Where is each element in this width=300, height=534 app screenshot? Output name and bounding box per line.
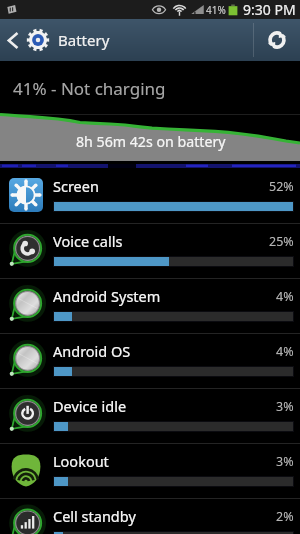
button[interactable]: Android OS [0, 334, 300, 388]
staticText: 3% [276, 453, 294, 470]
staticText: Voice calls [53, 231, 123, 251]
button[interactable]: Android System [0, 279, 300, 333]
button[interactable]: Device idle [0, 389, 300, 443]
staticText: 41% [206, 3, 226, 17]
staticText: 4% [276, 343, 294, 360]
staticText: 52% [269, 178, 294, 195]
button[interactable]: Refresh [254, 19, 300, 61]
staticText: 25% [269, 233, 294, 250]
button[interactable]: Lookout [0, 444, 300, 498]
staticText: Lookout [53, 451, 109, 471]
staticText: Battery [58, 30, 110, 50]
staticText: Device idle [53, 396, 127, 416]
staticText: 8h 56m 42s on battery [76, 132, 226, 151]
staticText: 4% [276, 288, 294, 305]
button[interactable]: Cell standby [0, 499, 300, 534]
staticText: 2% [276, 508, 294, 525]
staticText: Screen [53, 176, 99, 196]
other: Back [8, 32, 18, 49]
staticText: 41% - Not charging [13, 77, 166, 100]
staticText: 3% [276, 398, 294, 415]
button[interactable]: Voice calls [0, 224, 300, 278]
staticText: Cell standby [53, 506, 136, 526]
button[interactable]: Back [0, 19, 118, 61]
button[interactable]: Screen [0, 169, 300, 223]
staticText: Android OS [53, 341, 131, 361]
staticText: Android System [53, 286, 161, 306]
staticText: 9:30 PM [243, 0, 296, 19]
